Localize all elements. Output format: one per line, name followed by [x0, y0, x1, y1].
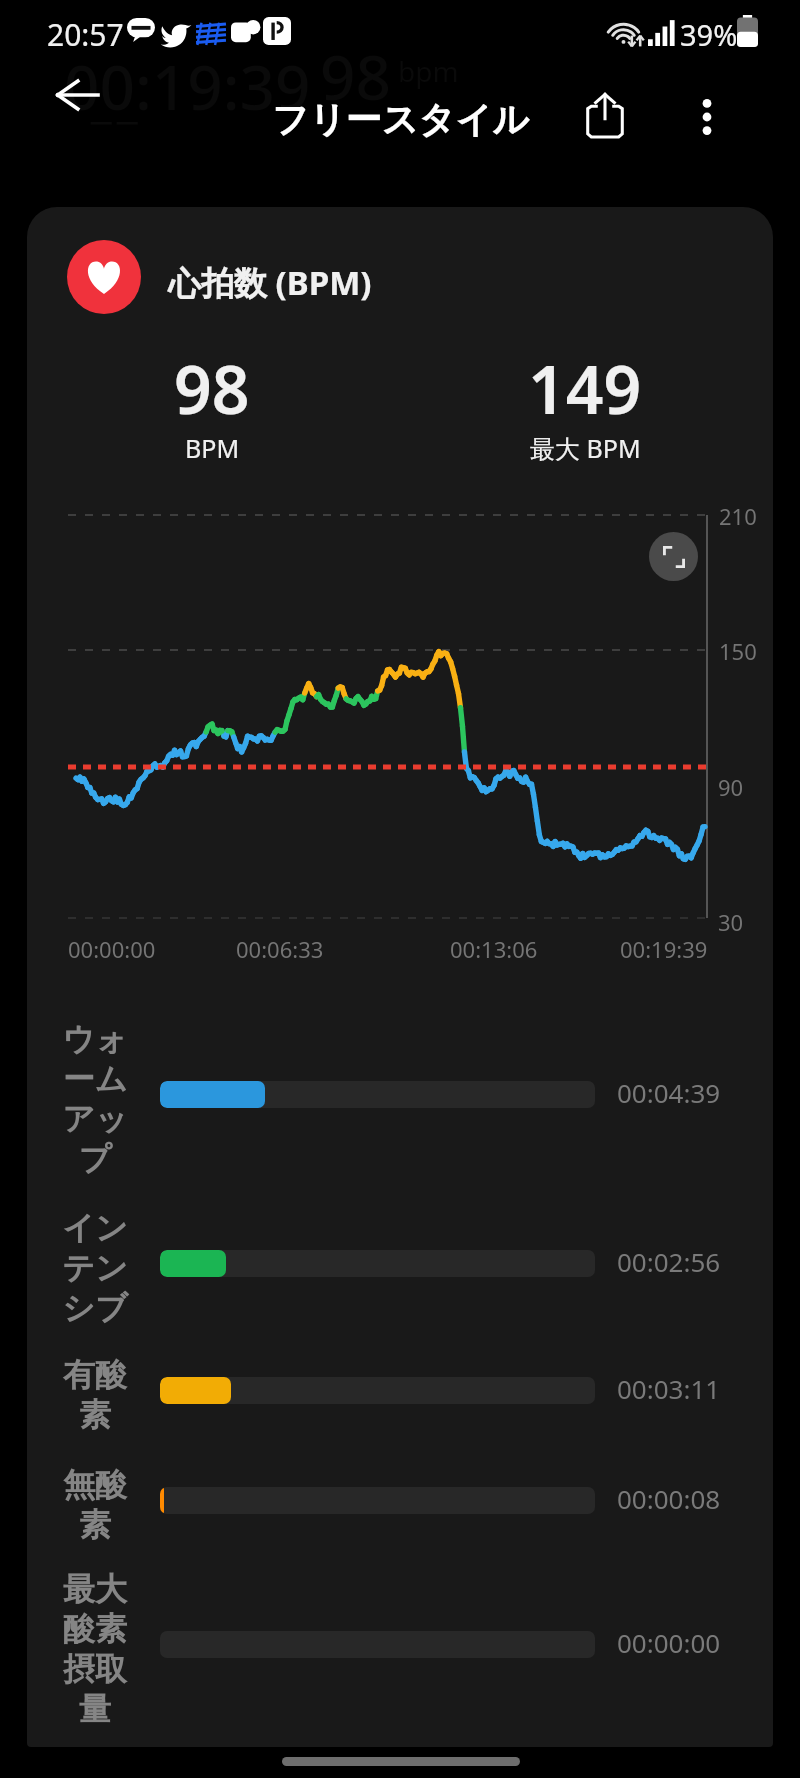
- staticText: 149: [528, 343, 642, 433]
- staticText: 00:04:39: [617, 1075, 721, 1110]
- staticText: 00:00:00: [68, 934, 156, 964]
- staticText: 00:00:00: [617, 1625, 721, 1660]
- staticText: 00:00:08: [617, 1481, 721, 1516]
- staticText: 00:13:06: [450, 934, 538, 964]
- staticText: 00:02:56: [617, 1244, 721, 1279]
- staticText: インテンシブ: [59, 1208, 131, 1328]
- staticText: フリースタイル: [272, 97, 530, 142]
- staticText: 無酸素: [59, 1465, 131, 1545]
- staticText: 98: [320, 34, 391, 118]
- staticText: 00:19:39: [64, 44, 311, 128]
- staticText: 最大 BPM: [530, 431, 641, 465]
- staticText: 00:06:33: [236, 934, 324, 964]
- staticText: 有酸素: [59, 1355, 131, 1435]
- staticText: 00:19:39: [620, 934, 708, 964]
- staticText: 30: [718, 907, 744, 937]
- staticText: 39%: [680, 15, 738, 54]
- staticText: bpm: [398, 52, 459, 90]
- staticText: 210: [719, 501, 757, 531]
- staticText: ウォームアップ: [59, 1019, 131, 1179]
- button[interactable]: Back: [39, 57, 115, 133]
- staticText: 最大酸素摂取量: [59, 1569, 131, 1729]
- button[interactable]: Expand chart: [649, 532, 698, 581]
- staticText: 00:03:11: [617, 1371, 721, 1406]
- staticText: 150: [719, 636, 757, 666]
- staticText: 心拍数 (BPM): [168, 260, 372, 305]
- staticText: 20:57: [47, 14, 124, 55]
- staticText: 98: [174, 343, 250, 433]
- button[interactable]: Share: [567, 77, 643, 153]
- staticText: BPM: [185, 431, 240, 465]
- button[interactable]: More options: [669, 79, 745, 155]
- staticText: 90: [718, 772, 744, 802]
